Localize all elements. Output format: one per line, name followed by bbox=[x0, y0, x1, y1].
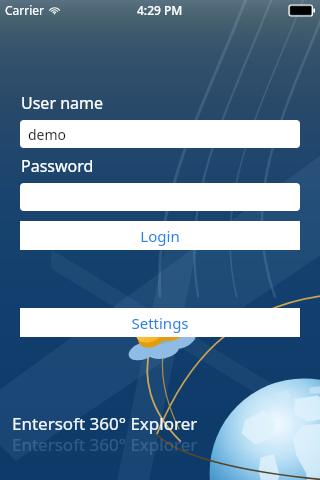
staticText: 4:29 PM bbox=[137, 2, 183, 18]
staticText: Settings bbox=[131, 313, 189, 333]
button[interactable] bbox=[20, 183, 300, 211]
button[interactable]: Settings bbox=[20, 308, 300, 337]
button[interactable]: Login bbox=[20, 221, 300, 250]
staticText: User name bbox=[21, 92, 104, 114]
staticText: Entersoft 360° Explorer bbox=[12, 433, 198, 456]
staticText: demo bbox=[28, 125, 67, 144]
staticText: Carrier bbox=[5, 2, 45, 18]
staticText: Password bbox=[21, 155, 94, 177]
staticText: Entersoft 360° Explorer bbox=[12, 412, 198, 435]
staticText: Login bbox=[140, 226, 180, 246]
button[interactable]: demo bbox=[20, 120, 300, 148]
